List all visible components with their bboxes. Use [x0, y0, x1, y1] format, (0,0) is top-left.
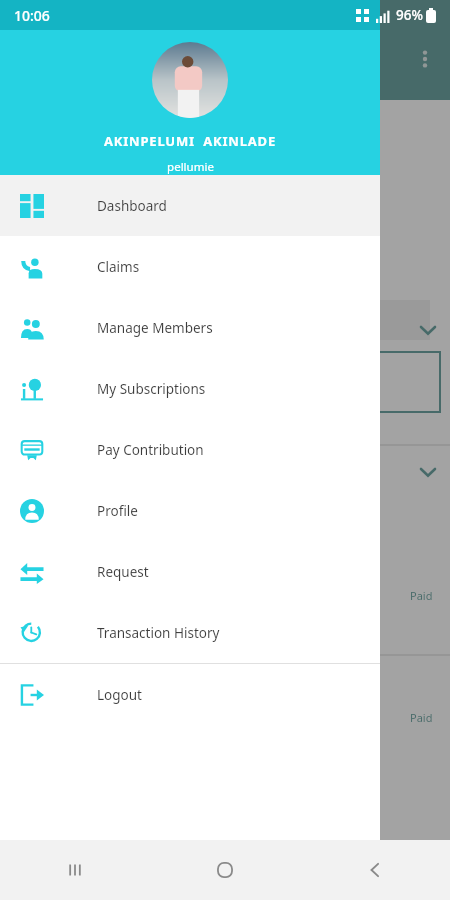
staticText: Claims	[97, 258, 140, 276]
staticText: Manage Members	[97, 319, 213, 337]
staticText: Paid	[410, 710, 433, 725]
staticText: Dashboard	[97, 197, 167, 215]
button[interactable]: Manage Members	[0, 297, 380, 358]
button[interactable]: Claims	[0, 236, 380, 297]
staticText: Request	[97, 563, 149, 581]
staticText: Logout	[97, 686, 142, 704]
staticText: Paid	[410, 588, 433, 603]
button[interactable]: Logout	[0, 664, 380, 725]
button[interactable]: Request	[0, 541, 380, 602]
staticText: Pay Contribution	[97, 441, 204, 459]
staticText: Profile	[97, 502, 138, 520]
staticText: AKINPELUMI AKINLADE	[104, 132, 276, 150]
staticText: Transaction History	[97, 624, 220, 642]
button[interactable]: Back	[300, 840, 450, 900]
staticText: My Subscriptions	[97, 380, 206, 398]
button[interactable]: More options	[408, 42, 442, 76]
button[interactable]: Transaction History	[0, 602, 380, 663]
staticText: 10:06	[14, 6, 50, 25]
staticText: 96%	[396, 6, 423, 24]
button[interactable]: Recents	[0, 840, 150, 900]
button[interactable]: Home	[150, 840, 300, 900]
button[interactable]: Pay Contribution	[0, 419, 380, 480]
button[interactable]: My Subscriptions	[0, 358, 380, 419]
button[interactable]: Dashboard	[0, 175, 380, 236]
button[interactable]: Profile	[0, 480, 380, 541]
staticText: pellumie	[167, 159, 214, 175]
